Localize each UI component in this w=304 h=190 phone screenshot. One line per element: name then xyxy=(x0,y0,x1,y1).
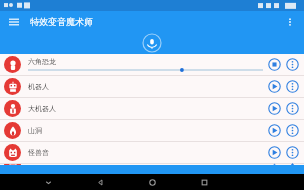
staticText: 怪兽音 xyxy=(28,148,263,157)
staticText: 山洞 xyxy=(28,126,263,135)
button[interactable]: 六角恐龙 xyxy=(0,54,304,75)
button[interactable]: Play xyxy=(267,101,282,116)
button[interactable]: 大机器人 xyxy=(0,98,304,119)
button[interactable]: Item options xyxy=(285,145,300,160)
staticText: 大机器人 xyxy=(28,104,263,113)
staticText: 特效变音魔术师 xyxy=(30,16,282,27)
button[interactable]: Back xyxy=(92,174,108,190)
button[interactable]: Item options xyxy=(285,79,300,94)
staticText: 六角恐龙 xyxy=(28,57,56,66)
button[interactable]: Play xyxy=(267,145,282,160)
button[interactable]: 怪兽音 xyxy=(0,142,304,163)
button[interactable]: Play xyxy=(267,79,282,94)
button[interactable]: 机器人 xyxy=(0,76,304,97)
button[interactable]: Recents xyxy=(196,174,212,190)
button[interactable]: Menu xyxy=(6,14,22,30)
button[interactable]: Item options xyxy=(285,101,300,116)
button[interactable]: More options xyxy=(282,14,298,30)
button[interactable]: 低沉音 xyxy=(0,164,304,165)
button[interactable]: Item options xyxy=(285,164,300,165)
button[interactable]: Hide keyboard xyxy=(40,174,56,190)
button[interactable]: 山洞 xyxy=(0,120,304,141)
staticText: 机器人 xyxy=(28,82,263,91)
button[interactable]: Stop xyxy=(267,57,282,72)
button[interactable]: Home xyxy=(144,174,160,190)
button[interactable]: Item options xyxy=(285,57,300,72)
button[interactable]: Record xyxy=(142,33,162,53)
button[interactable]: Play xyxy=(267,164,282,165)
button[interactable]: Play xyxy=(267,123,282,138)
button[interactable]: Item options xyxy=(285,123,300,138)
